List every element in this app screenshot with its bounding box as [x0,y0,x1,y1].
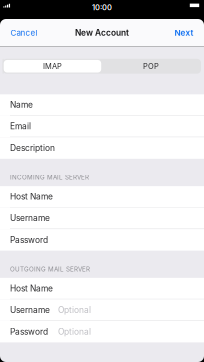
staticText: Username [10,213,50,223]
staticText: Next [175,28,194,38]
staticText: IMAP [43,62,62,71]
button[interactable]: Email [0,116,204,137]
staticText: Email [10,121,31,131]
button[interactable]: Password [0,229,204,251]
staticText: Password [10,327,48,337]
button[interactable]: Name [0,94,204,116]
button[interactable]: IMAP [4,59,101,74]
button[interactable]: POP [101,59,201,74]
button[interactable]: Username [0,299,204,321]
staticText: Username [10,305,50,315]
staticText: POP [143,62,159,71]
staticText: Optional [58,305,91,315]
button[interactable]: Host Name [0,186,204,208]
staticText: Description [10,143,55,153]
staticText: Host Name [10,191,53,202]
staticText: Optional [58,327,91,337]
staticText: OUTGOING MAIL SERVER [10,265,90,273]
staticText: Name [10,100,33,110]
button[interactable]: Description [0,137,204,159]
staticText: New Account [75,28,129,38]
button[interactable]: Next [167,21,204,45]
staticText: INCOMING MAIL SERVER [10,174,89,181]
staticText: Cancel [10,28,37,38]
staticText: Host Name [10,283,53,293]
button[interactable]: Host Name [0,278,204,299]
staticText: Password [10,235,48,245]
staticText: 10:00 [92,3,112,12]
button[interactable]: Password [0,321,204,342]
button[interactable]: Cancel [0,21,45,45]
button[interactable]: Username [0,208,204,229]
